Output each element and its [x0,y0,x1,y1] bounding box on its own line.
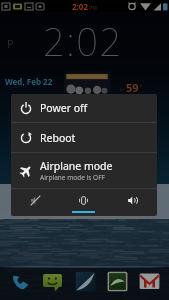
button[interactable]: Silent [11,189,59,216]
staticText: Airplane mode [40,159,113,173]
button[interactable]: Sound [108,189,157,216]
staticText: 2:02 [72,1,88,12]
staticText: Power off [40,101,88,115]
button[interactable]: Power off [11,94,157,122]
staticText: H [120,87,126,94]
staticText: Airplane mode is OFF [40,173,105,182]
button[interactable]: Messaging [40,268,64,294]
staticText: PM [88,5,97,12]
staticText: 59 [126,80,139,95]
staticText: Wed, Feb 22 [5,76,53,87]
staticText: P [7,36,14,51]
staticText: 2:02 [43,15,123,67]
button[interactable]: Camera [105,268,129,294]
button[interactable]: Browser [73,268,97,294]
button[interactable]: Gmail [137,268,161,294]
staticText: ° [139,82,143,93]
staticText: Reboot [40,131,76,145]
button[interactable]: Vibrate [59,189,108,216]
button[interactable]: Reboot [11,123,157,152]
button[interactable]: Phone [8,268,32,294]
button[interactable]: Airplane mode [11,153,157,188]
